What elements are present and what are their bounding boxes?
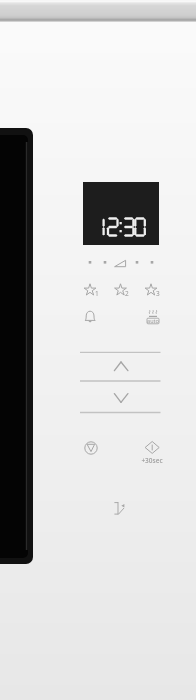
button[interactable]: Kitchen timer — [82, 308, 99, 326]
staticText: 2 — [125, 289, 129, 298]
button[interactable]: Oven door — [0, 128, 33, 564]
staticText: 3 — [156, 289, 160, 298]
button[interactable]: Increase — [80, 354, 160, 379]
button[interactable]: Decrease — [80, 383, 160, 410]
button[interactable]: Clock display 12:30 — [83, 182, 159, 245]
button[interactable]: Memory 1 — [80, 281, 100, 299]
button[interactable]: Auto cook — [144, 307, 161, 326]
staticText: auto — [145, 317, 161, 324]
button[interactable]: Memory 2 — [110, 281, 131, 299]
button[interactable]: Stop — [82, 439, 100, 457]
staticText: +30sec — [139, 456, 165, 465]
staticText: 1 — [95, 289, 99, 298]
button[interactable]: Start, plus 30 seconds — [139, 438, 165, 464]
button[interactable]: Memory 3 — [141, 281, 161, 299]
button[interactable]: Open door — [110, 498, 128, 517]
